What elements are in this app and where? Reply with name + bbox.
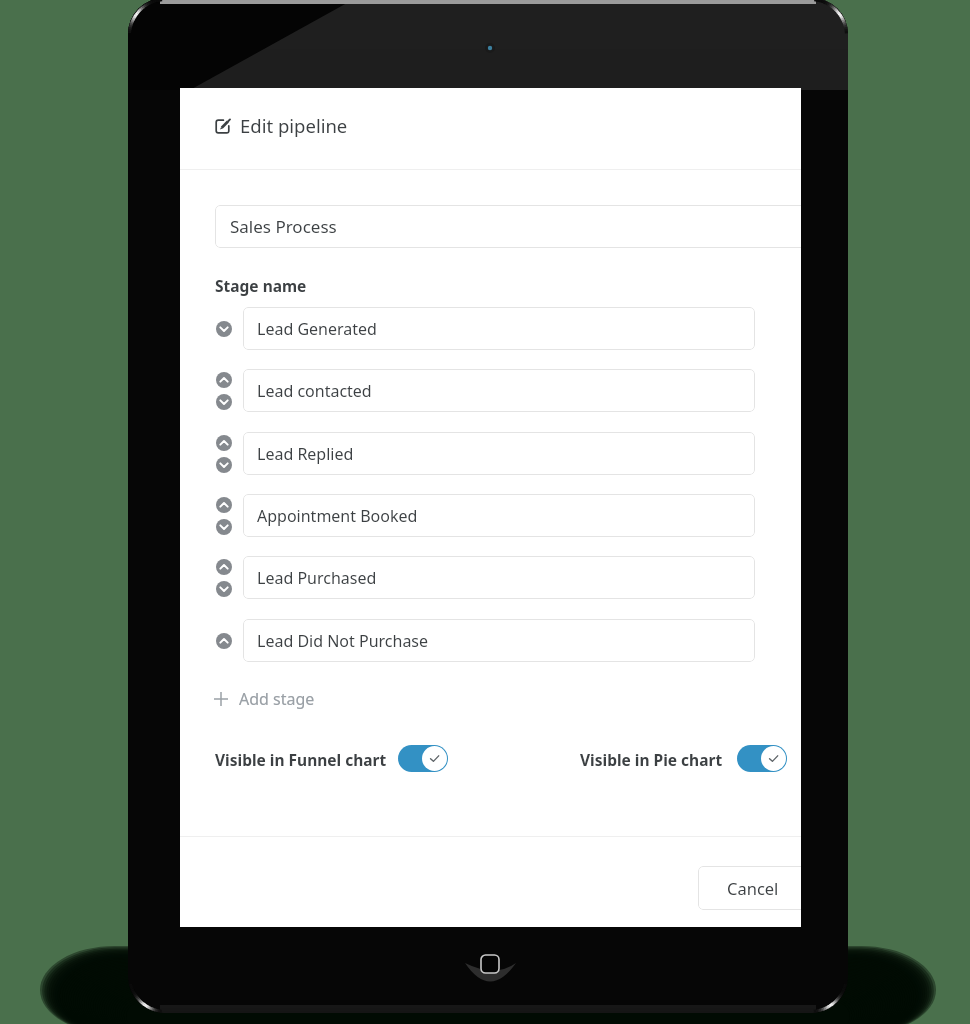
- button[interactable]: Move stage up: [216, 559, 232, 575]
- button[interactable]: Move stage up: [216, 497, 232, 513]
- staticText: Cancel: [727, 877, 779, 899]
- button[interactable]: Lead Generated: [243, 307, 755, 350]
- staticText: Lead Replied: [257, 443, 354, 465]
- staticText: Visible in Funnel chart: [215, 749, 387, 770]
- staticText: Appointment Booked: [257, 505, 418, 527]
- button[interactable]: Move stage down: [216, 457, 232, 473]
- staticText: Lead Purchased: [257, 567, 377, 589]
- button[interactable]: Lead Replied: [243, 432, 755, 475]
- button[interactable]: Lead Did Not Purchase: [243, 619, 755, 662]
- button[interactable]: Move stage up: [216, 372, 232, 388]
- button[interactable]: Move stage down: [216, 394, 232, 410]
- button[interactable]: Move stage down: [216, 321, 232, 337]
- staticText: Lead contacted: [257, 380, 372, 402]
- staticText: Stage name: [215, 275, 307, 296]
- button[interactable]: Move stage down: [216, 519, 232, 535]
- staticText: Sales Process: [230, 215, 337, 238]
- staticText: Edit pipeline: [240, 113, 348, 138]
- button[interactable]: Cancel: [698, 866, 801, 910]
- button[interactable]: Lead Purchased: [243, 556, 755, 599]
- button[interactable]: Move stage down: [216, 581, 232, 597]
- button[interactable]: Edit pipeline: [215, 113, 348, 138]
- staticText: Add stage: [239, 688, 315, 710]
- staticText: Lead Generated: [257, 318, 377, 340]
- button[interactable]: Appointment Booked: [243, 494, 755, 537]
- button[interactable]: Visible in Pie chart: [737, 745, 787, 772]
- button[interactable]: Sales Process: [215, 205, 801, 248]
- button[interactable]: Visible in Funnel chart: [398, 745, 448, 772]
- button[interactable]: Lead contacted: [243, 369, 755, 412]
- staticText: Visible in Pie chart: [580, 749, 723, 770]
- staticText: Lead Did Not Purchase: [257, 630, 429, 652]
- button[interactable]: Move stage up: [216, 633, 232, 649]
- button[interactable]: Move stage up: [216, 435, 232, 451]
- button[interactable]: Add stage: [213, 688, 315, 710]
